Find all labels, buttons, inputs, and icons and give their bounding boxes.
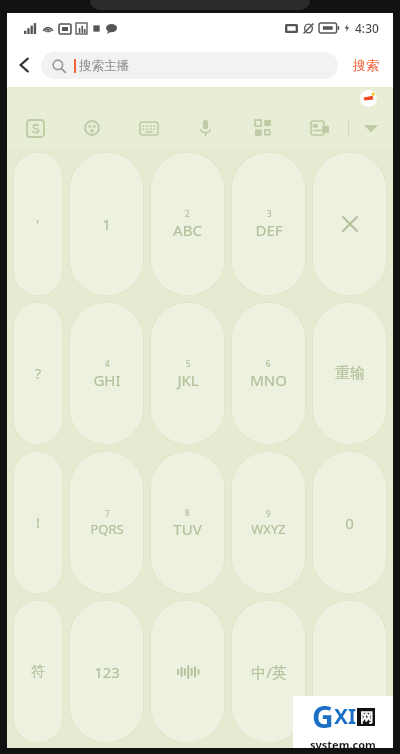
button[interactable]: Hide keyboard [349, 109, 393, 147]
staticText: system.com [310, 737, 376, 748]
button[interactable]: 2 [150, 152, 225, 296]
staticText: 符 [31, 663, 45, 681]
button[interactable]: 中/英 [231, 600, 306, 743]
button[interactable]: ! [13, 451, 63, 594]
staticText: 123 [94, 662, 120, 682]
button[interactable] [150, 600, 225, 743]
button[interactable]: 搜索主播 [41, 52, 338, 79]
staticText: DEF [255, 220, 283, 240]
button[interactable]: ' [13, 152, 63, 296]
button[interactable]: 重输 [312, 302, 387, 445]
staticText: ' [36, 215, 40, 234]
button[interactable]: Emoji [63, 109, 120, 147]
staticText: GHI [93, 370, 121, 390]
staticText: PQRS [90, 520, 124, 538]
button[interactable]: Tools [234, 109, 291, 147]
staticText: MNO [250, 370, 287, 390]
staticText: XI [334, 702, 357, 731]
button[interactable]: Voice input [177, 109, 234, 147]
staticText: 3 [267, 208, 272, 219]
button[interactable]: 9 [231, 451, 306, 594]
staticText: 1 [102, 214, 111, 234]
staticText: 9 [266, 508, 271, 519]
staticText: JKL [177, 370, 199, 390]
button[interactable]: Keyboard [120, 109, 177, 147]
staticText: 重输 [335, 364, 365, 383]
staticText: 搜索 [353, 57, 379, 73]
button[interactable]: 5 [150, 302, 225, 445]
button[interactable]: 3 [231, 152, 306, 296]
staticText: 7 [105, 508, 110, 519]
button[interactable] [312, 600, 387, 743]
staticText: ? [35, 364, 42, 383]
button[interactable]: Back [7, 43, 41, 87]
button[interactable]: Notice [360, 90, 377, 107]
staticText: G [312, 696, 334, 737]
button[interactable]: Clipboard [291, 109, 348, 147]
button[interactable]: ? [13, 302, 63, 445]
staticText: TUV [173, 519, 202, 539]
staticText: 4:30 [355, 20, 379, 36]
button[interactable]: 8 [150, 451, 225, 594]
button[interactable]: 123 [69, 600, 144, 743]
staticText: 8 [185, 507, 190, 518]
button[interactable]: 7 [69, 451, 144, 594]
staticText: 5 [186, 358, 191, 369]
button[interactable]: 0 [312, 451, 387, 594]
button[interactable]: 4 [69, 302, 144, 445]
button[interactable]: 1 [69, 152, 144, 296]
button[interactable] [312, 152, 387, 296]
staticText: ! [36, 513, 40, 532]
staticText: 中/英 [251, 662, 287, 682]
staticText: 网 [360, 709, 373, 725]
button[interactable]: 搜索 [338, 43, 393, 87]
staticText: WXYZ [251, 520, 286, 538]
button[interactable]: 符 [13, 600, 63, 743]
staticText: 搜索主播 [79, 58, 129, 74]
staticText: 0 [345, 513, 354, 533]
button[interactable]: 6 [231, 302, 306, 445]
staticText: 4 [105, 358, 110, 369]
staticText: ABC [173, 220, 202, 240]
staticText: 6 [266, 358, 271, 369]
button[interactable]: Sogou [7, 109, 63, 147]
staticText: 2 [185, 208, 190, 219]
